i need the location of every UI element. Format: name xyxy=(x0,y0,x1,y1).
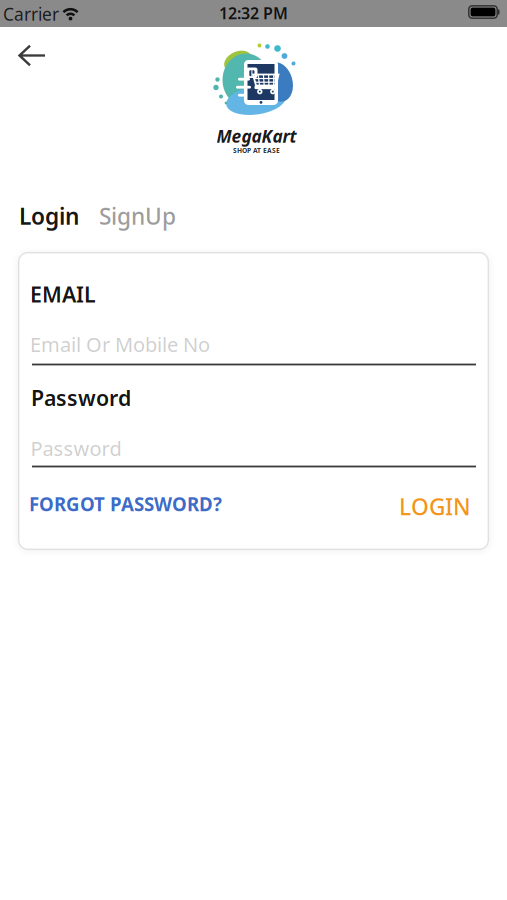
button[interactable]: Login xyxy=(19,201,79,231)
staticText: MegaKart xyxy=(216,124,296,147)
button[interactable]: SignUp xyxy=(99,201,176,231)
staticText: Carrier xyxy=(3,2,59,25)
staticText: Login xyxy=(19,201,79,231)
staticText: SignUp xyxy=(99,201,176,231)
button[interactable]: Back xyxy=(18,44,47,66)
staticText: FORGOT PASSWORD? xyxy=(29,491,222,516)
staticText: Password xyxy=(31,383,131,412)
staticText: Password xyxy=(30,435,121,462)
staticText: 12:32 PM xyxy=(219,2,288,24)
button[interactable]: LOGIN xyxy=(399,491,471,522)
staticText: EMAIL xyxy=(30,280,96,308)
button[interactable]: FORGOT PASSWORD? xyxy=(29,491,222,516)
staticText: SHOP AT EASE xyxy=(233,146,280,155)
staticText: LOGIN xyxy=(399,491,471,522)
staticText: Email Or Mobile No xyxy=(30,331,210,358)
